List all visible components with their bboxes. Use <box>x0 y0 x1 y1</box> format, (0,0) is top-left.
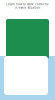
staticText: Learn how to work correctly <box>6 3 49 6</box>
staticText: in every situation <box>14 6 40 9</box>
